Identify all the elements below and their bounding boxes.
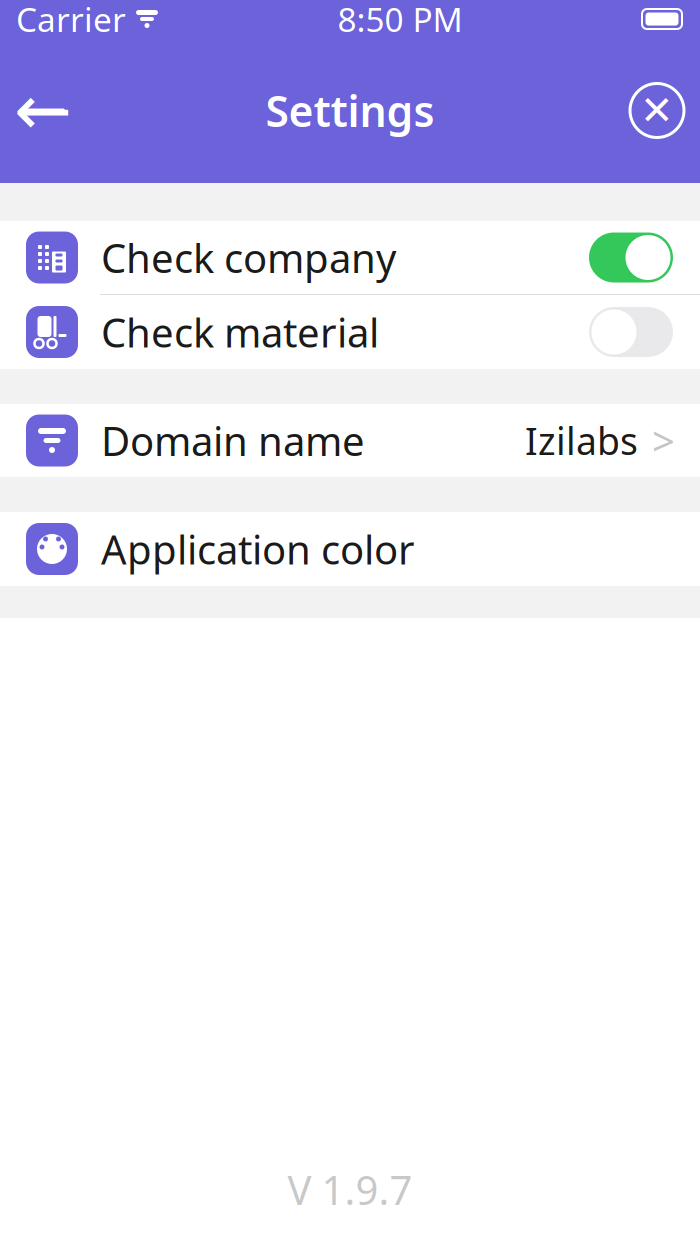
staticText: Check material xyxy=(101,305,379,358)
button[interactable]: Check company xyxy=(0,221,700,294)
staticText: Carrier xyxy=(16,0,126,41)
staticText: > xyxy=(652,414,675,467)
button[interactable]: Domain name xyxy=(0,404,700,477)
staticText: ✕ xyxy=(640,88,674,133)
button[interactable]: Back xyxy=(0,38,86,183)
button[interactable]: Check material xyxy=(0,295,700,369)
staticText: Check company xyxy=(101,231,396,284)
staticText: ← xyxy=(14,71,72,150)
staticText: V 1.9.7 xyxy=(287,1163,412,1216)
staticText: Application color xyxy=(101,522,415,575)
staticText: Izilabs xyxy=(525,416,638,465)
staticText: 8:50 PM xyxy=(337,0,462,41)
staticText: Settings xyxy=(265,82,434,139)
button[interactable]: Close xyxy=(614,38,700,183)
staticText: Domain name xyxy=(101,414,365,467)
button[interactable]: Application color xyxy=(0,512,700,586)
